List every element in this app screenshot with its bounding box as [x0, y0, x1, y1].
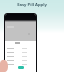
button[interactable] [7, 50, 34, 54]
button[interactable]: Apply [18, 66, 24, 69]
staticText: Easy Pill Apply [17, 2, 47, 8]
button[interactable] [7, 54, 34, 58]
button[interactable] [7, 62, 34, 66]
button[interactable] [7, 46, 34, 50]
button[interactable]: Easy Pill Apply [0, 0, 64, 10]
button[interactable] [7, 58, 34, 62]
